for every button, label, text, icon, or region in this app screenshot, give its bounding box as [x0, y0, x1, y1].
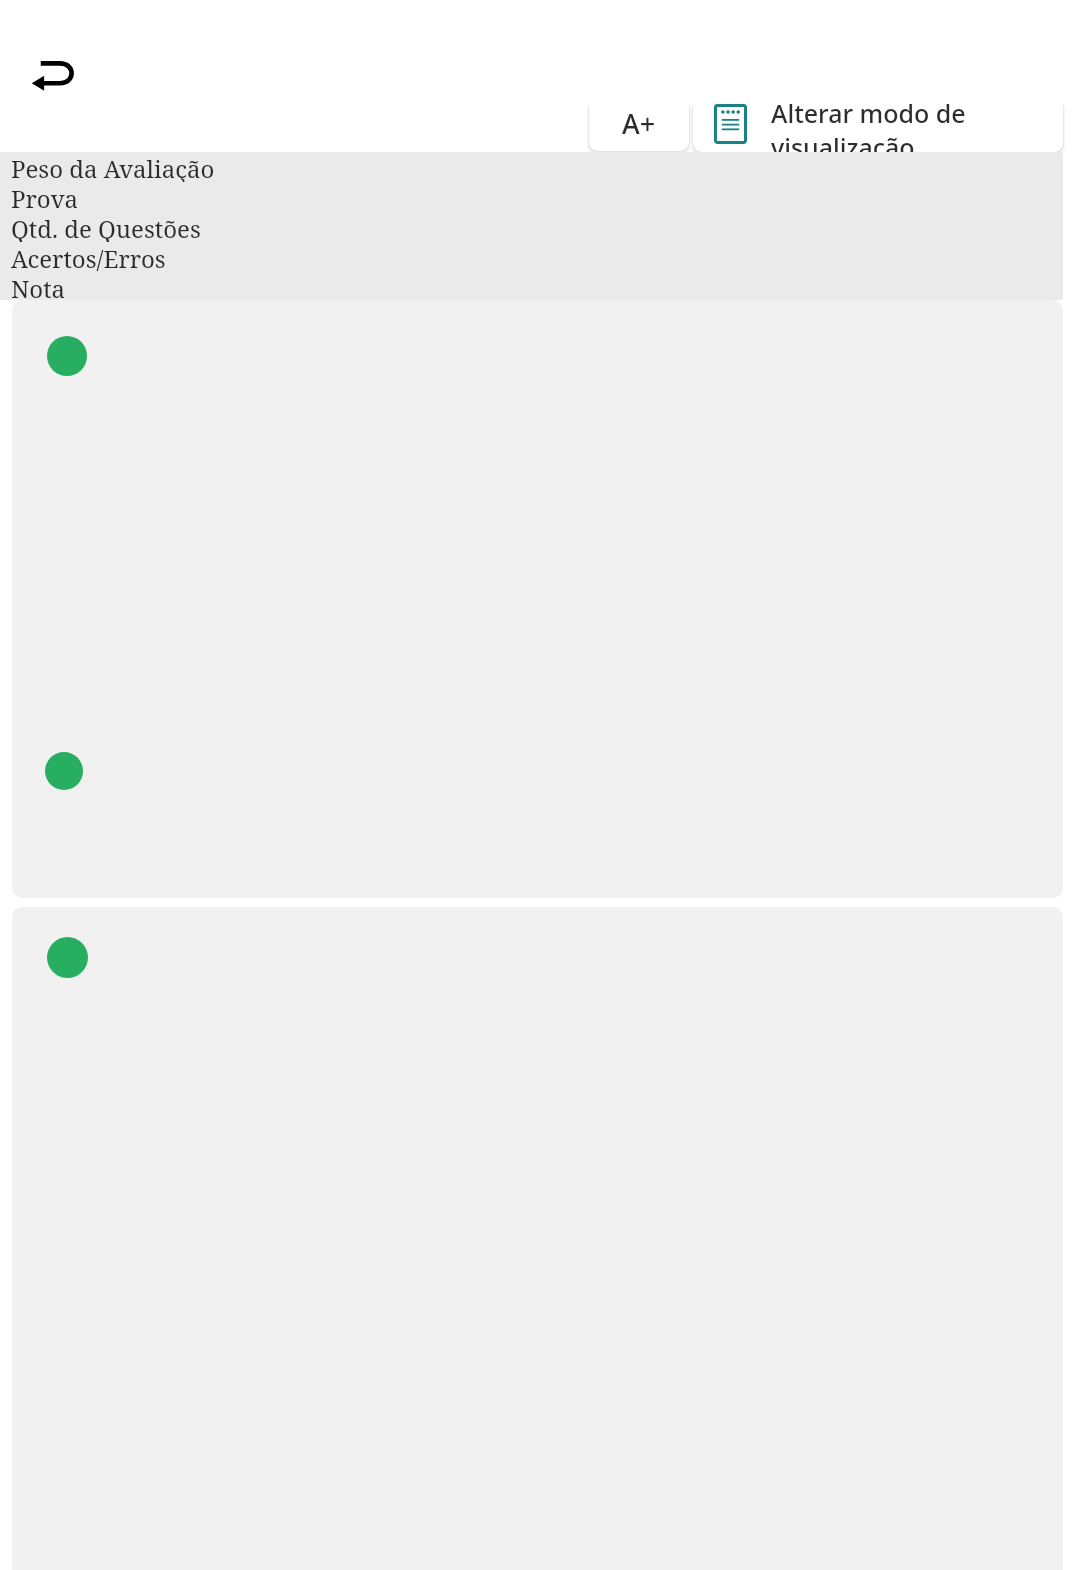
button[interactable]	[12, 907, 1063, 1570]
staticText: Nota	[11, 272, 66, 300]
staticText: Alterar modo de visualização	[771, 96, 1051, 152]
button[interactable]	[12, 300, 1063, 898]
staticText: Prova	[11, 182, 79, 212]
staticText: Qtd. de Questões	[11, 212, 201, 242]
button[interactable]: Voltar	[24, 42, 86, 104]
staticText: Peso da Avaliação	[11, 152, 215, 182]
button[interactable]: A+	[589, 96, 689, 151]
staticText: Acertos/Erros	[11, 242, 166, 272]
staticText: A+	[622, 105, 656, 142]
button[interactable]: Alterar modo de visualização	[693, 96, 1063, 152]
